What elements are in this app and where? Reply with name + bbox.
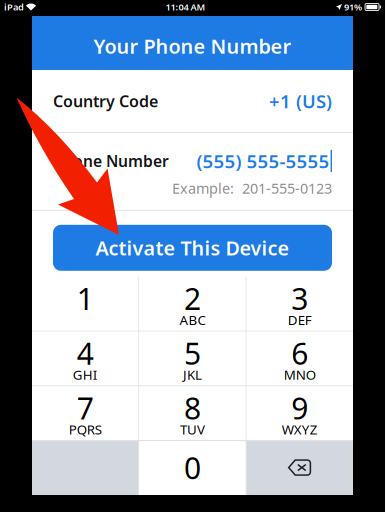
button[interactable]: 8	[139, 386, 246, 440]
staticText: 3	[291, 278, 308, 319]
staticText: iPad	[4, 1, 24, 13]
staticText: Example: 201-555-0123	[172, 178, 332, 198]
staticText: MNO	[284, 365, 316, 384]
staticText: DEF	[288, 311, 312, 329]
staticText: 9	[291, 387, 308, 428]
staticText: 1	[77, 278, 94, 319]
button[interactable]: 7	[32, 386, 138, 440]
staticText: Activate This Device	[95, 234, 289, 261]
staticText: Country Code	[53, 90, 158, 112]
staticText: PQRS	[69, 420, 102, 438]
staticText: Your Phone Number	[93, 32, 291, 60]
staticText: Phone Number	[53, 150, 169, 171]
staticText: 2	[184, 278, 201, 319]
button[interactable]: 9	[247, 386, 353, 440]
staticText: 8	[184, 387, 201, 428]
button[interactable]: 2	[139, 277, 246, 331]
staticText: 5	[184, 333, 201, 373]
staticText: 4	[77, 333, 94, 373]
staticText: 7	[77, 387, 94, 428]
staticText: +1 (US)	[269, 88, 332, 114]
button[interactable]: 3	[247, 277, 353, 331]
button[interactable]: Country Code	[32, 70, 353, 132]
button[interactable]: Activate This Device	[32, 211, 353, 277]
button[interactable]: 4	[32, 332, 138, 385]
button[interactable]: 6	[247, 332, 353, 385]
staticText: (555) 555-5555	[197, 148, 330, 174]
button[interactable]: Delete	[247, 441, 353, 495]
button[interactable]: 0	[139, 441, 246, 495]
button[interactable]: 1	[32, 277, 138, 331]
staticText: WXYZ	[282, 420, 318, 438]
staticText: 6	[291, 333, 308, 373]
staticText: 0	[184, 447, 201, 488]
staticText: 91%	[344, 1, 362, 13]
button[interactable]: 5	[139, 332, 246, 385]
staticText: 11:04 AM	[165, 1, 205, 13]
staticText: GHI	[73, 365, 98, 384]
staticText: TUV	[180, 420, 205, 438]
staticText: JKL	[183, 365, 202, 384]
staticText: ABC	[179, 311, 205, 329]
